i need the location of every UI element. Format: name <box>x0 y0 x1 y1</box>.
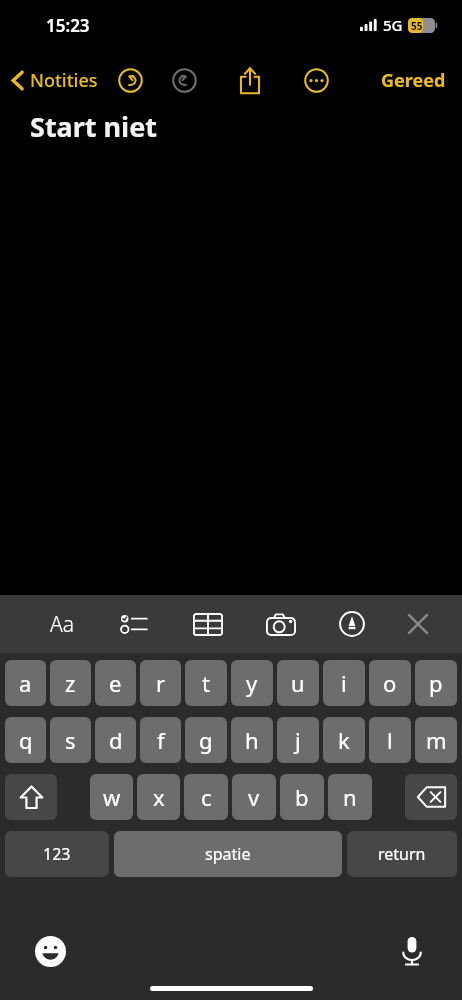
staticText: d <box>109 725 123 755</box>
button[interactable]: v <box>232 774 276 820</box>
staticText: s <box>65 725 76 755</box>
button[interactable]: spatie <box>114 831 342 877</box>
staticText: b <box>295 782 309 812</box>
button[interactable]: i <box>323 660 365 706</box>
staticText: Notities <box>30 68 98 93</box>
staticText: o <box>383 668 397 698</box>
button[interactable]: c <box>184 774 228 820</box>
button[interactable]: Table <box>186 602 230 646</box>
button[interactable]: Share <box>230 60 270 100</box>
staticText: c <box>201 782 212 812</box>
button[interactable]: s <box>50 717 91 763</box>
staticText: r <box>156 668 166 698</box>
button[interactable]: p <box>415 660 457 706</box>
button[interactable]: g <box>185 717 227 763</box>
staticText: 123 <box>43 843 71 865</box>
button[interactable]: o <box>369 660 411 706</box>
button[interactable]: u <box>277 660 319 706</box>
button[interactable]: z <box>50 660 91 706</box>
staticText: 55 <box>411 19 423 33</box>
staticText: i <box>341 668 347 698</box>
staticText: return <box>378 843 426 865</box>
button[interactable]: h <box>231 717 273 763</box>
button[interactable]: l <box>369 717 411 763</box>
staticText: m <box>426 725 447 755</box>
staticText: j <box>295 725 301 755</box>
staticText: k <box>338 725 350 755</box>
staticText: w <box>103 782 121 812</box>
button[interactable]: More <box>296 60 336 100</box>
button[interactable]: y <box>231 660 273 706</box>
button[interactable]: Shift <box>5 774 57 820</box>
button[interactable]: k <box>323 717 365 763</box>
button[interactable]: Checklist <box>112 602 156 646</box>
button[interactable]: Undo <box>110 60 150 100</box>
button[interactable]: b <box>280 774 324 820</box>
button[interactable]: x <box>137 774 180 820</box>
button[interactable]: Redo <box>164 60 204 100</box>
staticText: z <box>65 668 76 698</box>
button[interactable]: Dictation <box>390 929 434 973</box>
staticText: a <box>19 668 32 698</box>
button[interactable]: n <box>328 774 372 820</box>
staticText: l <box>387 725 393 755</box>
staticText: h <box>245 725 259 755</box>
staticText: 5G <box>383 15 403 35</box>
staticText: Aa <box>50 610 75 639</box>
staticText: n <box>343 782 357 812</box>
button[interactable]: j <box>277 717 319 763</box>
button[interactable]: Gereed <box>375 64 452 97</box>
staticText: v <box>248 782 260 812</box>
staticText: q <box>19 725 33 755</box>
button[interactable]: m <box>415 717 457 763</box>
staticText: spatie <box>205 843 251 865</box>
button[interactable]: a <box>5 660 46 706</box>
staticText: Start niet <box>30 108 158 145</box>
button[interactable]: return <box>347 831 457 877</box>
staticText: Gereed <box>381 68 446 93</box>
button[interactable]: d <box>95 717 136 763</box>
button[interactable]: r <box>140 660 181 706</box>
button[interactable]: e <box>95 660 136 706</box>
button[interactable]: f <box>140 717 181 763</box>
staticText: u <box>291 668 305 698</box>
button[interactable]: Notities <box>8 64 102 97</box>
button[interactable]: Camera <box>259 602 303 646</box>
staticText: t <box>202 668 210 698</box>
staticText: p <box>429 668 443 698</box>
button[interactable]: Markup <box>330 602 374 646</box>
button[interactable]: w <box>90 774 133 820</box>
button[interactable]: Emoji <box>28 929 72 973</box>
button[interactable]: Format <box>40 602 84 646</box>
button[interactable]: q <box>5 717 46 763</box>
staticText: x <box>153 782 165 812</box>
staticText: y <box>246 668 258 698</box>
button[interactable]: Close keyboard <box>396 602 440 646</box>
button[interactable]: t <box>185 660 227 706</box>
staticText: e <box>109 668 122 698</box>
staticText: g <box>199 725 213 755</box>
button[interactable]: Backspace <box>405 774 457 820</box>
button[interactable]: 123 <box>5 831 109 877</box>
staticText: 15:23 <box>46 14 90 37</box>
staticText: f <box>157 725 165 755</box>
